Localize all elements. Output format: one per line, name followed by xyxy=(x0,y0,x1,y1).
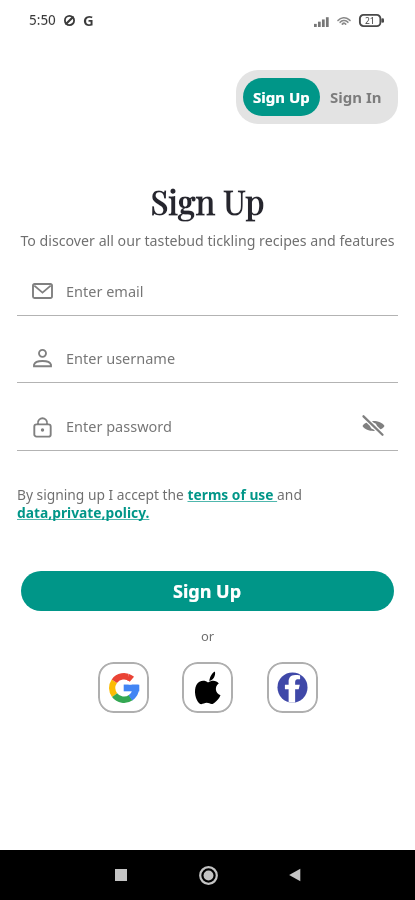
staticText: Sign Up xyxy=(173,579,242,604)
staticText: G xyxy=(83,10,94,30)
staticText: To discover all our tastebud tickling re… xyxy=(0,231,415,250)
button[interactable]: Sign In xyxy=(320,78,391,116)
button[interactable]: Sign Up xyxy=(243,78,320,116)
button[interactable]: Sign Up xyxy=(21,571,394,611)
button[interactable]: Back xyxy=(271,851,319,899)
staticText: By signing up I accept the terms of use … xyxy=(17,485,302,522)
button[interactable]: By signing up I accept the terms of use … xyxy=(17,485,377,522)
button[interactable]: Home xyxy=(184,851,232,899)
button[interactable]: Enter username xyxy=(17,316,398,383)
button[interactable]: Enter password xyxy=(17,383,398,451)
staticText: 21 xyxy=(365,15,375,27)
staticText: Enter password xyxy=(66,416,172,436)
button[interactable]: Show password xyxy=(356,409,390,443)
staticText: Sign Up xyxy=(253,87,310,107)
staticText: Enter email xyxy=(66,281,144,301)
staticText: Sign Up xyxy=(0,179,415,223)
staticText: or xyxy=(0,627,415,645)
staticText: Sign In xyxy=(330,87,382,107)
button[interactable]: Sign up with Apple xyxy=(182,662,233,713)
staticText: 5:50 xyxy=(29,11,56,29)
button[interactable]: Recent apps xyxy=(97,851,145,899)
button[interactable]: Sign up with Facebook xyxy=(267,662,318,713)
staticText: Enter username xyxy=(66,348,176,368)
button[interactable]: Enter email xyxy=(17,248,398,316)
button[interactable]: Sign up with Google xyxy=(98,662,149,713)
